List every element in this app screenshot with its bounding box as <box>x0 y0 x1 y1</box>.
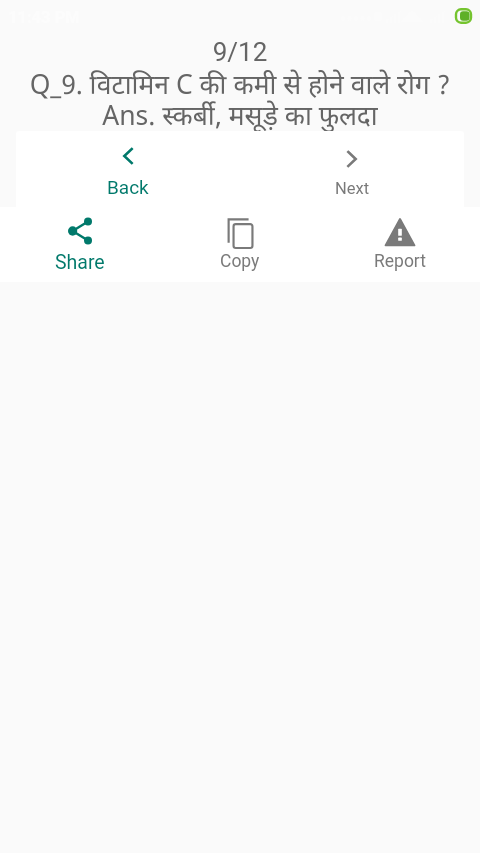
staticText: Ans. स्कर्बी, मसूड़े का फुलदा <box>0 97 480 133</box>
button[interactable]: Next <box>240 131 464 221</box>
staticText: Copy <box>220 251 260 272</box>
button[interactable]: Share <box>0 207 160 282</box>
staticText: Next <box>335 179 370 198</box>
button[interactable]: Back <box>16 131 240 221</box>
staticText: Q_9. विटामिन C की कमी से होने वाले रोग ? <box>0 66 480 102</box>
staticText: 9/12 <box>0 37 480 67</box>
button[interactable]: Report <box>320 207 480 282</box>
button[interactable]: Copy <box>160 207 320 282</box>
staticText: Share <box>55 251 105 274</box>
staticText: Back <box>107 176 149 198</box>
staticText: Report <box>374 251 426 272</box>
